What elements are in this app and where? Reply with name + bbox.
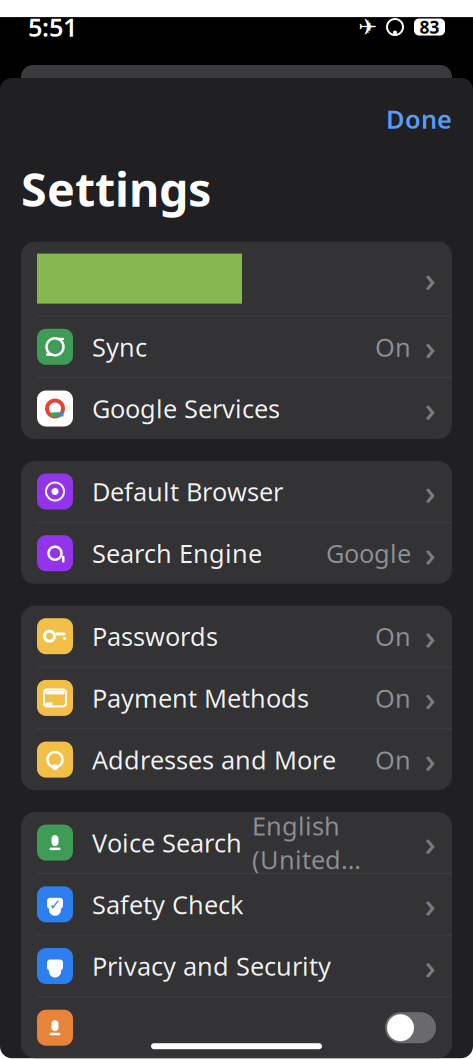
staticText: ›	[424, 385, 435, 431]
button[interactable]: Passwords	[21, 606, 452, 667]
staticText: ✓	[49, 896, 61, 913]
staticText: Passwords	[92, 619, 218, 653]
staticText: ›	[424, 737, 435, 783]
staticText: Google	[326, 536, 411, 570]
staticText: Default Browser	[92, 475, 283, 508]
staticText: Safety Check	[92, 887, 244, 921]
staticText: 83	[419, 15, 439, 38]
staticText: Addresses and More	[92, 743, 336, 776]
staticText: On	[375, 681, 411, 715]
staticText: Privacy and Security	[92, 949, 331, 983]
button[interactable]: Search Engine	[21, 523, 452, 584]
staticText: ›	[424, 324, 435, 370]
staticText: ›	[424, 468, 435, 514]
button[interactable]: Payment Methods	[21, 667, 452, 728]
button[interactable]	[21, 997, 452, 1058]
button[interactable]: Voice Search	[21, 812, 452, 873]
staticText: 5:51	[28, 10, 77, 44]
button[interactable]: Privacy and Security	[21, 935, 452, 996]
staticText: Google Services	[92, 392, 280, 425]
button[interactable]: Google Services	[21, 378, 452, 439]
staticText: Voice Search	[92, 826, 242, 859]
staticText: ›	[424, 675, 435, 721]
button[interactable]: Done	[365, 92, 473, 146]
button[interactable]: ›	[21, 242, 452, 316]
staticText: ›	[424, 256, 435, 302]
staticText: Settings	[21, 158, 211, 220]
staticText: Payment Methods	[92, 681, 309, 715]
staticText: ✈	[358, 14, 377, 40]
button[interactable]: Default Browser	[21, 461, 452, 522]
staticText: ›	[424, 881, 435, 927]
staticText: ›	[424, 613, 435, 659]
staticText: Done	[386, 102, 452, 136]
staticText: On	[375, 619, 411, 653]
staticText: Search Engine	[92, 536, 262, 570]
staticText: English (United…	[252, 809, 361, 876]
staticText: ›	[424, 820, 435, 866]
button[interactable]: ✓	[21, 874, 452, 935]
button[interactable]: Sync	[21, 316, 452, 377]
staticText: On	[375, 330, 411, 364]
staticText: ›	[424, 530, 435, 576]
staticText: ›	[424, 943, 435, 989]
button[interactable]: Addresses and More	[21, 729, 452, 790]
staticText: Sync	[92, 330, 147, 364]
staticText: On	[375, 743, 411, 776]
